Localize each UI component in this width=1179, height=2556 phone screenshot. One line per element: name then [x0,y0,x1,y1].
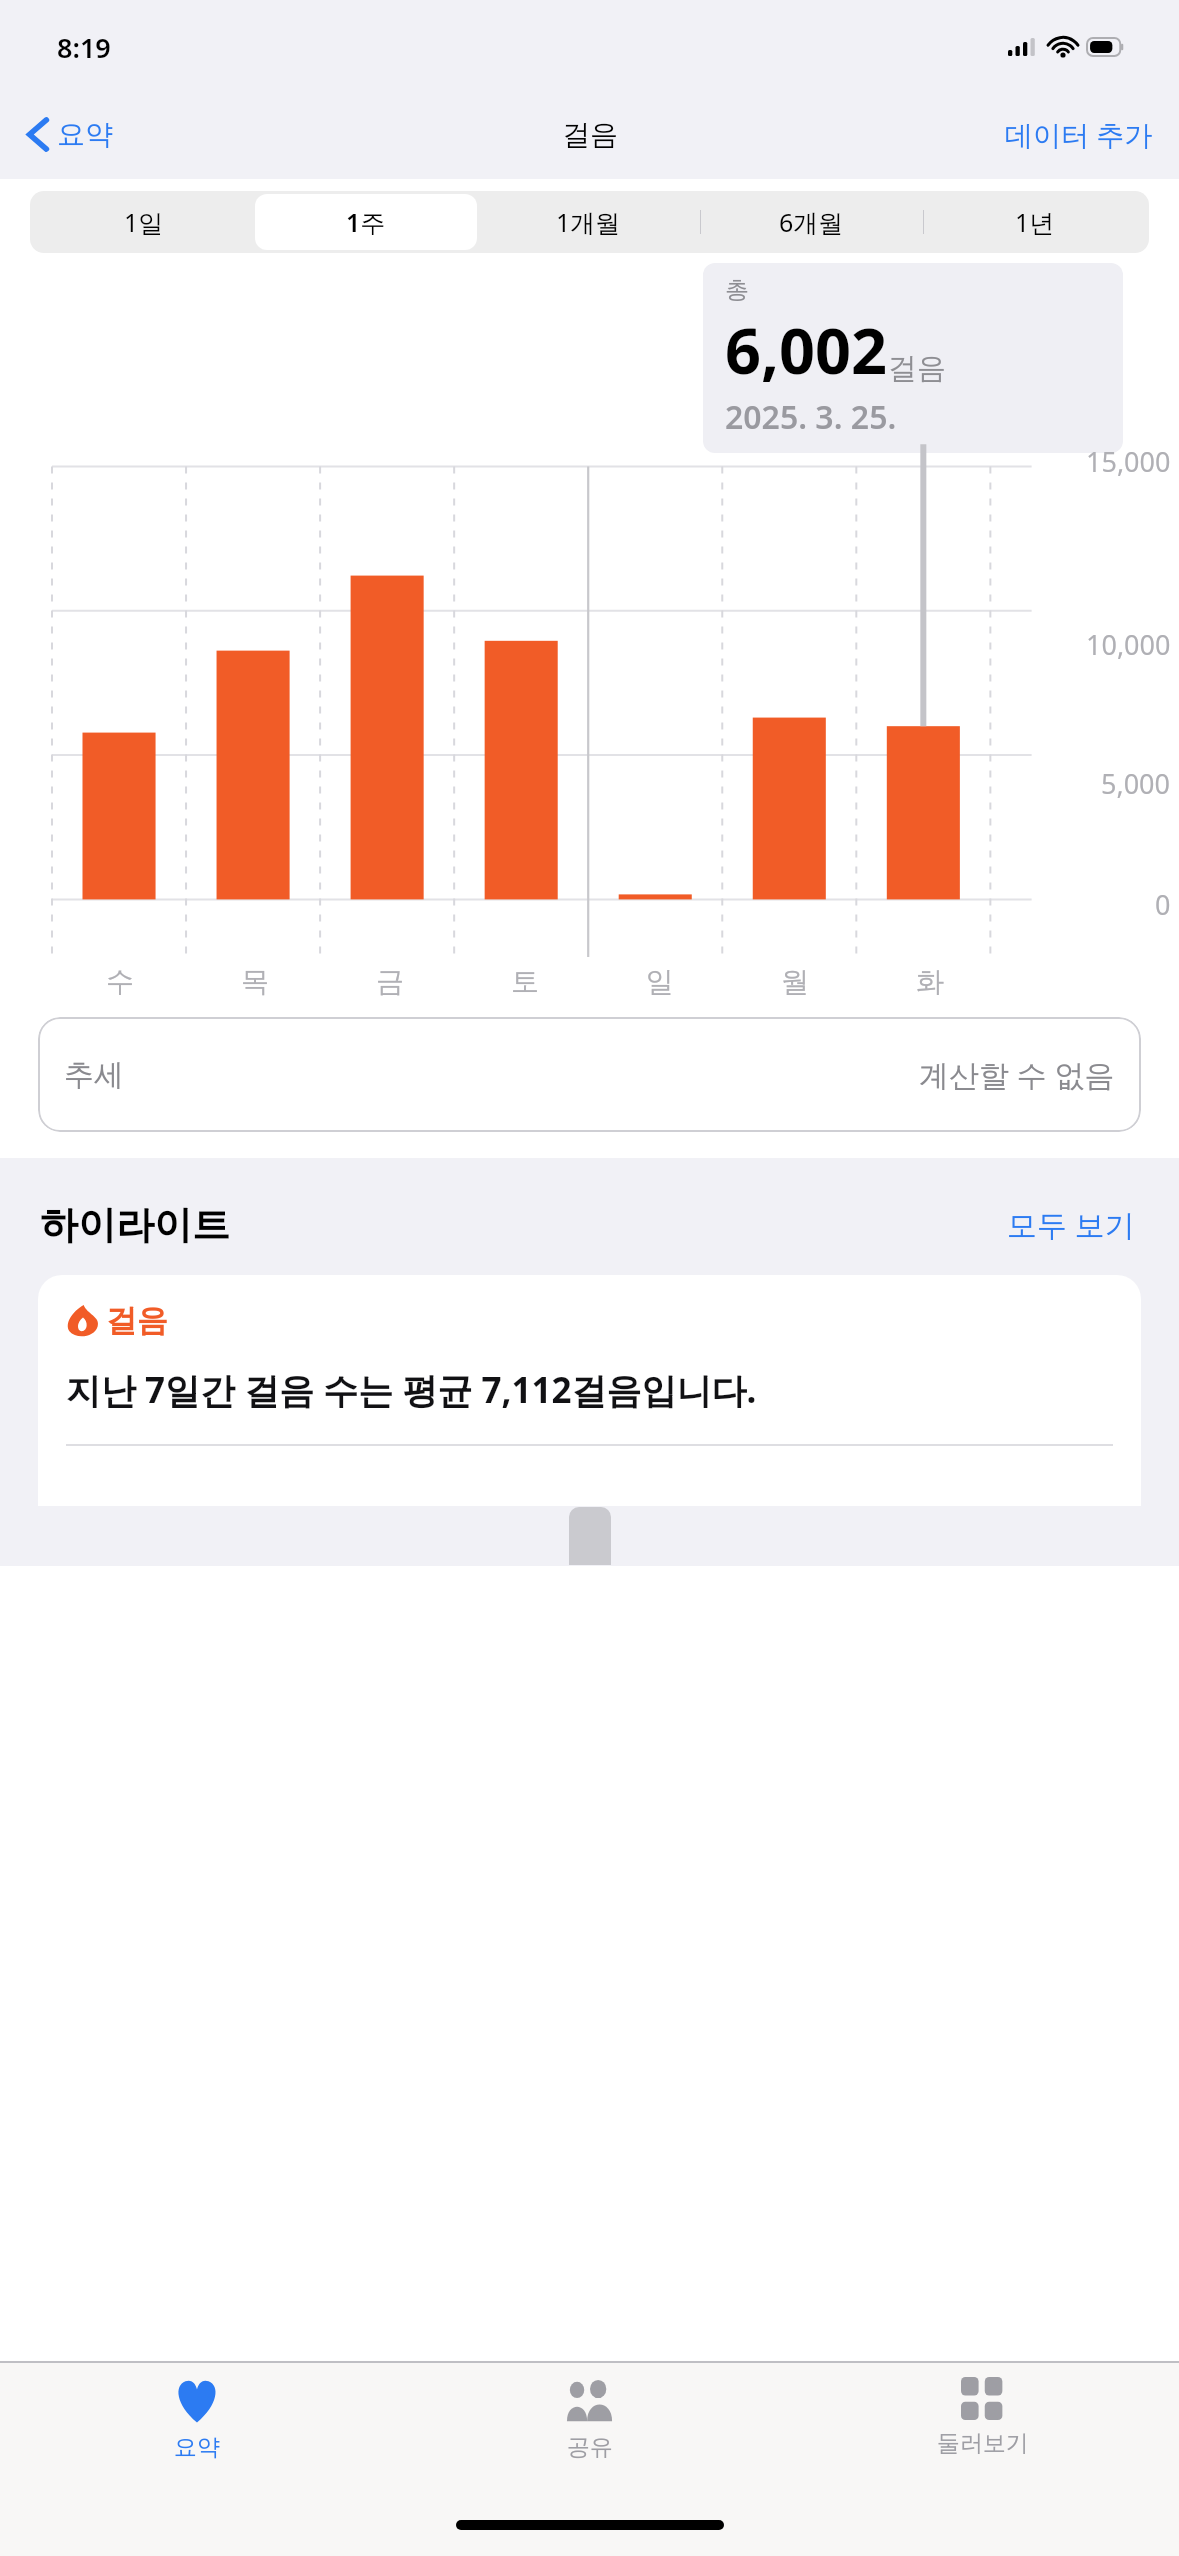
staticText: 목 [241,964,269,999]
staticText: 걸음 [562,117,618,152]
button[interactable]: 1개월 [477,194,700,250]
staticText: 추세 [64,1056,124,1094]
button[interactable]: 6개월 [700,194,923,250]
staticText: 6,002 [725,307,888,393]
staticText: 총 [725,275,749,305]
button[interactable]: 추세 [38,1017,1141,1132]
staticText: 1일 [124,205,164,239]
staticText: 일 [646,964,674,999]
staticText: 걸음 [888,350,946,387]
button[interactable]: 모두 보기 [1003,1200,1139,1249]
staticText: 10,000 [1086,626,1171,663]
button[interactable]: 1주 [255,194,477,250]
staticText: 둘러보기 [937,2429,1029,2458]
button[interactable]: 데이터 추가 [1001,109,1157,159]
staticText: 1개월 [556,205,621,239]
staticText: 1년 [1015,205,1055,239]
staticText: 월 [781,964,809,999]
staticText: 화 [916,964,944,999]
staticText: 요약 [57,117,113,152]
staticText: 15,000 [1086,443,1171,480]
staticText: 2025. 3. 25. [725,395,897,439]
button[interactable]: 걸음 [38,1275,1141,1506]
staticText: 6개월 [779,205,844,239]
button[interactable]: 1년 [923,194,1146,250]
button[interactable]: 둘러보기 [786,2363,1179,2508]
staticText: 1주 [346,205,386,239]
staticText: 하이라이트 [40,1201,230,1249]
button[interactable]: 요약 [22,111,119,158]
button[interactable]: 공유 [393,2363,786,2508]
staticText: 지난 7일간 걸음 수는 평균 7,112걸음입니다. [66,1366,757,1414]
staticText: 금 [376,964,404,999]
staticText: 계산할 수 없음 [919,1054,1115,1095]
staticText: 0 [1155,886,1171,923]
staticText: 걸음 [106,1301,168,1340]
button[interactable]: 요약 [0,2363,393,2508]
staticText: 요약 [174,2433,220,2462]
staticText: 5,000 [1101,765,1171,802]
staticText: 8:19 [57,29,111,66]
button[interactable]: 1일 [33,194,255,250]
staticText: 수 [106,964,134,999]
staticText: 공유 [567,2433,613,2462]
staticText: 토 [511,964,539,999]
